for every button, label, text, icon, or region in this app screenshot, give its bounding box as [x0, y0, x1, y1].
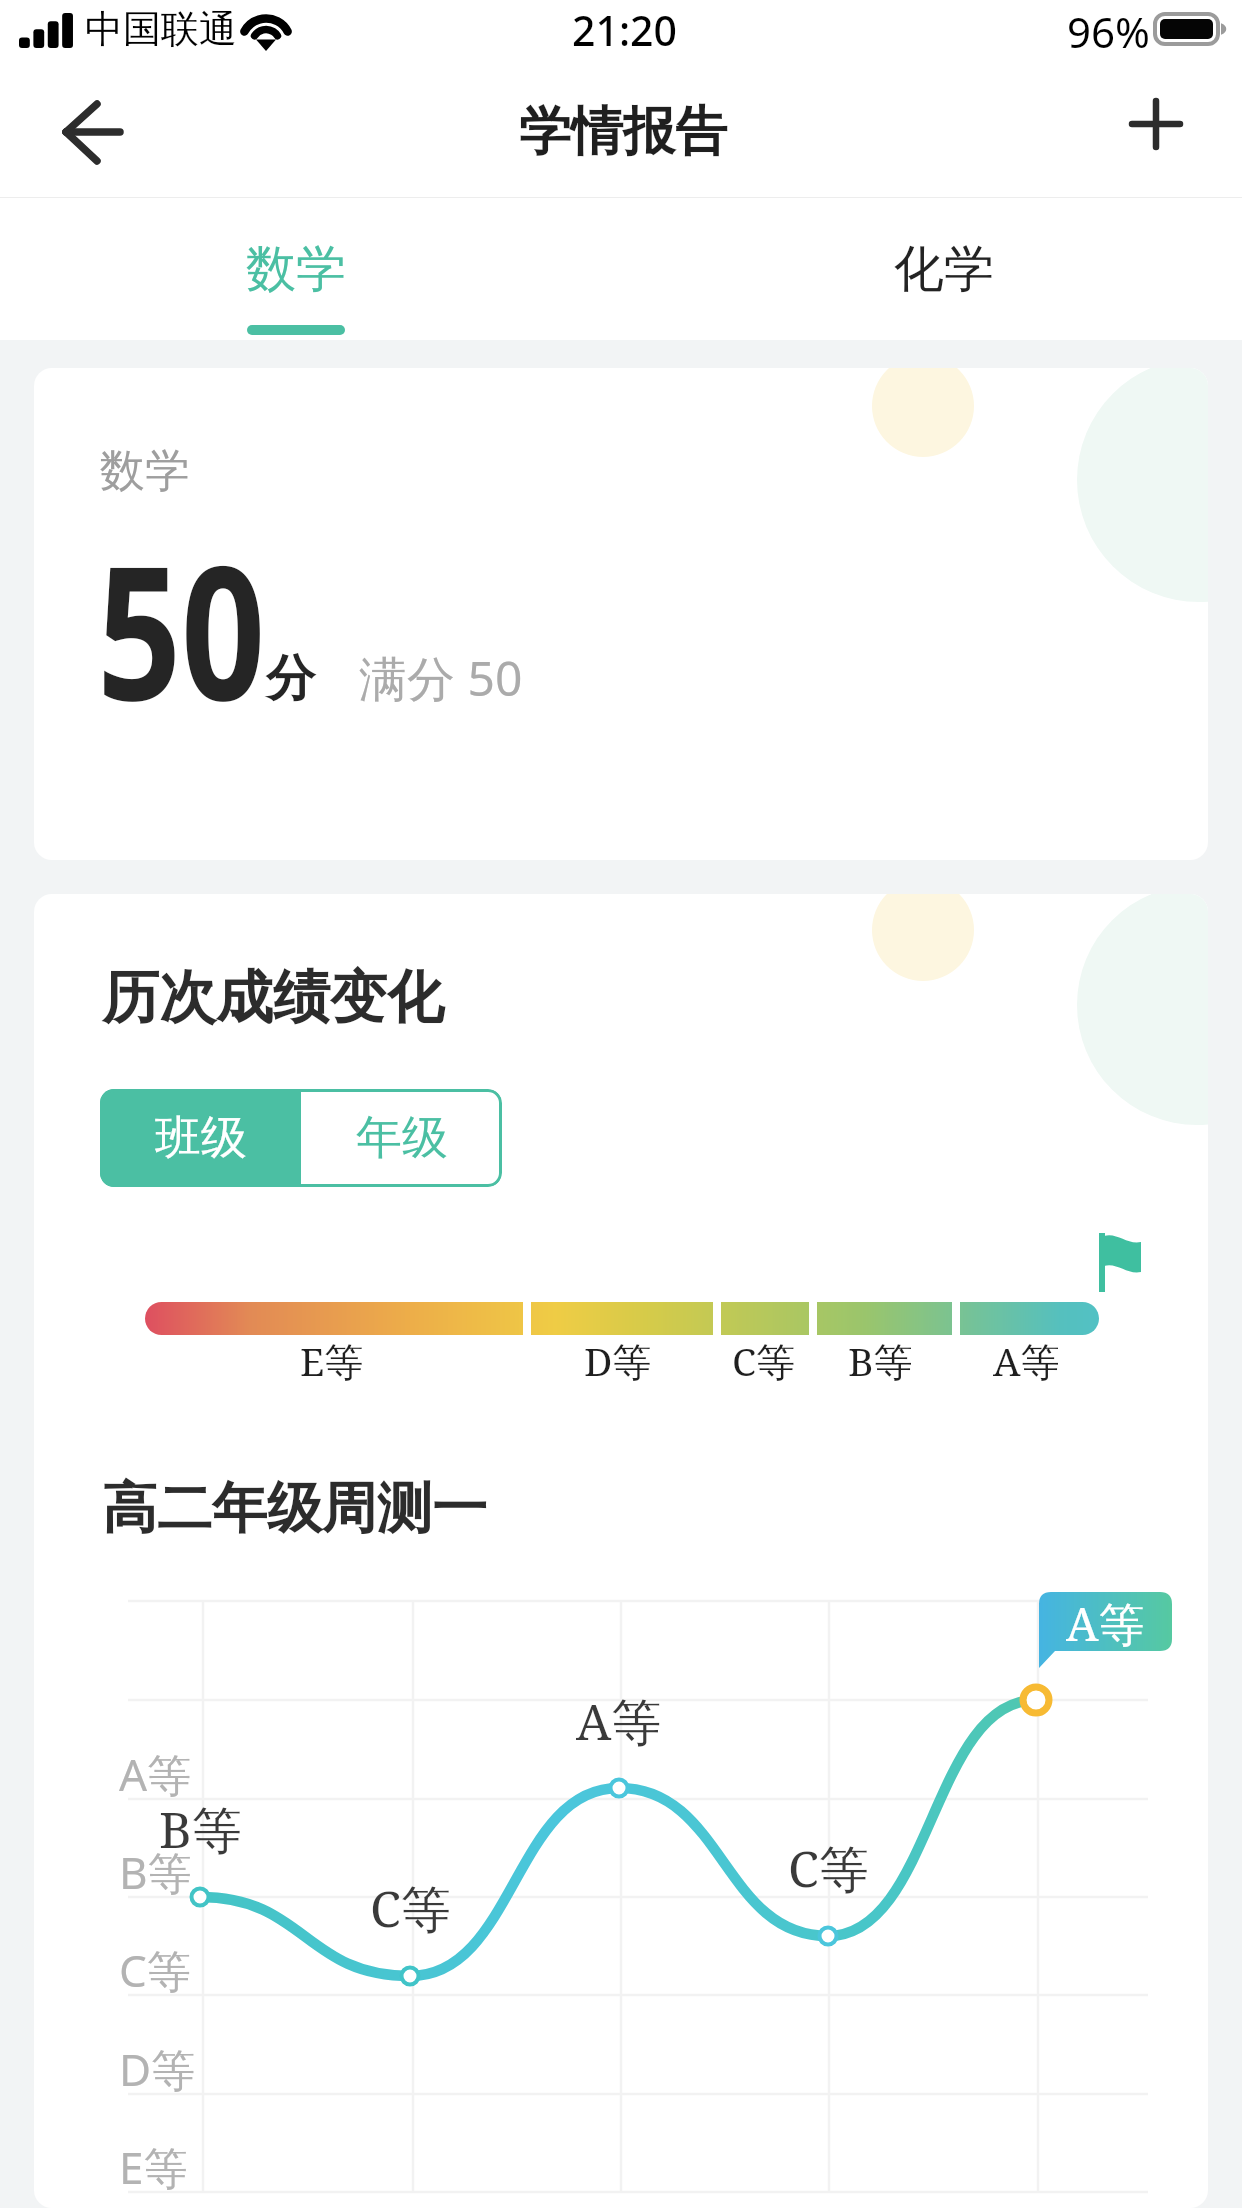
staticText: 学情报告 [519, 99, 727, 165]
staticText: E等 [300, 1334, 364, 1387]
staticText: D等 [584, 1334, 652, 1387]
staticText: C等 [788, 1834, 869, 1902]
staticText: 满分 50 [359, 645, 523, 711]
staticText: C等 [732, 1334, 795, 1387]
button[interactable]: 数学 [136, 198, 456, 340]
staticText: 年级 [356, 1109, 448, 1167]
staticText: 历次成绩变化 [102, 962, 444, 1034]
button[interactable]: 化学 [784, 198, 1104, 340]
button[interactable]: Add [1108, 84, 1204, 180]
staticText: A等 [119, 1744, 192, 1804]
staticText: 高二年级周测一 [102, 1474, 487, 1543]
staticText: B等 [848, 1334, 913, 1387]
staticText: 96% [1067, 3, 1150, 60]
staticText: B等 [159, 1795, 242, 1863]
staticText: A等 [576, 1687, 662, 1755]
button[interactable]: 年级 [301, 1089, 502, 1187]
staticText: A等 [993, 1334, 1060, 1387]
staticText: 分 [266, 648, 315, 710]
button[interactable]: Back [46, 84, 142, 180]
staticText: 21:20 [572, 2, 677, 58]
staticText: 数学 [246, 238, 346, 301]
staticText: 数学 [100, 443, 190, 500]
staticText: A等 [1066, 1592, 1145, 1651]
button[interactable]: 班级 [100, 1089, 301, 1187]
staticText: 中国联通 [85, 5, 237, 53]
staticText: E等 [119, 2137, 188, 2197]
staticText: B等 [119, 1842, 192, 1902]
staticText: 班级 [155, 1109, 247, 1167]
staticText: C等 [119, 1940, 191, 2000]
staticText: C等 [370, 1874, 451, 1942]
staticText: D等 [119, 2039, 196, 2099]
staticText: 化学 [894, 238, 994, 301]
